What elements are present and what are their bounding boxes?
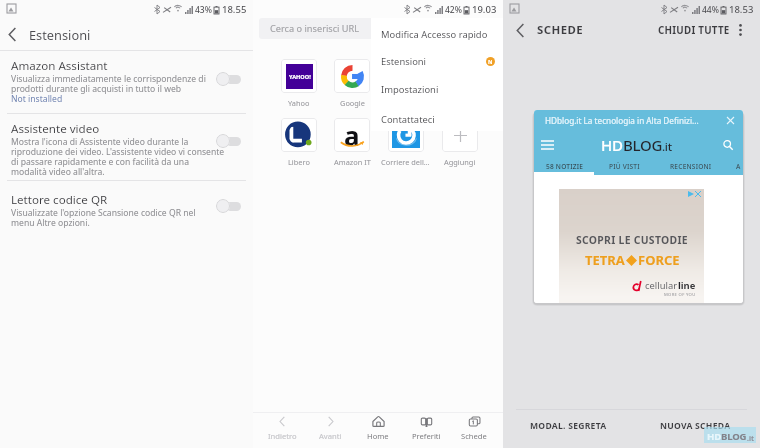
button[interactable]: YAHOO! <box>274 59 324 108</box>
staticText: Schede <box>461 431 487 441</box>
staticText: A <box>736 162 741 171</box>
button[interactable]: Libero <box>274 118 324 167</box>
staticText: Mostra l'icona di Assistente video duran… <box>11 137 189 147</box>
button[interactable]: CHIUDI TUTTE <box>658 20 730 40</box>
button[interactable]: Amazon Assistant <box>0 53 253 110</box>
staticText: 44% <box>702 4 719 16</box>
button[interactable]: Schede <box>453 415 495 441</box>
staticText: Cerca o inserisci URL <box>270 22 360 35</box>
button[interactable]: SCHEDE <box>537 21 584 39</box>
staticText: a <box>344 118 360 146</box>
button[interactable]: Impostazioni <box>371 75 503 103</box>
button[interactable]: Indietro <box>261 415 303 441</box>
staticText: MORE OF YOU <box>664 292 696 298</box>
staticText: BLOG <box>721 430 747 443</box>
staticText: FORCE <box>638 251 680 269</box>
button[interactable]: MODAL. SEGRETA <box>525 415 611 437</box>
button[interactable]: a <box>327 118 377 167</box>
button[interactable]: More options <box>727 17 753 43</box>
button[interactable]: Assistente video <box>0 116 253 183</box>
button[interactable]: Avanti <box>309 415 351 441</box>
staticText: Modifica Accesso rapido <box>381 28 488 41</box>
staticText: HDblog.it La tecnologia in Alta Definizi… <box>545 115 699 126</box>
staticText: Lettore codice QR <box>11 193 108 207</box>
button[interactable]: NUOVA SCHEDA <box>656 415 734 437</box>
staticText: 43% <box>195 4 212 16</box>
staticText: NUOVA SCHEDA <box>660 420 731 432</box>
staticText: Yahoo <box>288 98 310 108</box>
staticText: cellular <box>645 279 678 292</box>
staticText: Home <box>367 431 389 441</box>
staticText: .it <box>747 434 754 443</box>
button[interactable]: Aggiungi <box>435 118 485 167</box>
staticText: Assistente video <box>11 122 100 136</box>
staticText: riproduzione dei video. L'assistente vid… <box>11 147 225 157</box>
button[interactable]: Contattateci <box>371 105 503 133</box>
staticText: 42% <box>445 4 462 16</box>
staticText: HD <box>601 135 623 155</box>
staticText: MODAL. SEGRETA <box>530 420 607 432</box>
button[interactable]: Lettore codice QR <box>0 187 253 234</box>
staticText: Google <box>340 98 365 108</box>
staticText: 18.53 <box>729 3 754 16</box>
staticText: Not installed <box>11 94 63 104</box>
button[interactable]: Estensioni <box>371 47 503 75</box>
button[interactable]: Home <box>357 415 399 441</box>
staticText: Libero <box>288 157 310 167</box>
staticText: N <box>488 58 493 65</box>
button[interactable]: Back <box>507 17 533 43</box>
button[interactable]: Preferiti <box>405 415 447 441</box>
staticText: Contattateci <box>381 113 435 126</box>
button[interactable]: Back <box>0 19 27 49</box>
staticText: line <box>678 279 696 292</box>
staticText: Estensioni <box>381 55 427 68</box>
staticText: Estensioni <box>29 26 91 43</box>
staticText: Corriere della... <box>381 157 431 167</box>
button[interactable]: Toggle <box>216 72 241 86</box>
staticText: BLOG <box>623 135 662 155</box>
staticText: Amazon Assistant <box>11 59 108 73</box>
staticText: CHIUDI TUTTE <box>658 24 730 37</box>
staticText: Avanti <box>319 431 342 441</box>
button[interactable]: Corriere della... <box>381 118 431 167</box>
staticText: 58 NOTIZIE <box>546 162 584 171</box>
staticText: TETRA <box>585 251 625 269</box>
staticText: PIÙ VISTI <box>609 162 640 171</box>
staticText: di passare rapidamente e con facilità da… <box>11 157 189 167</box>
button[interactable]: Cerca o inserisci URL <box>259 18 497 39</box>
staticText: .it <box>662 139 672 155</box>
button[interactable]: Modifica Accesso rapido <box>371 20 503 48</box>
staticText: Visualizzate l'opzione Scansione codice … <box>11 208 196 218</box>
button[interactable]: Toggle <box>216 199 241 213</box>
staticText: modalità video all'altra. <box>11 167 105 177</box>
staticText: HD <box>707 430 721 443</box>
staticText: Aggiungi <box>444 157 476 167</box>
staticText: YAHOO! <box>289 73 311 81</box>
staticText: Impostazioni <box>381 83 439 96</box>
button[interactable]: Google <box>327 59 377 108</box>
button[interactable]: Toggle <box>216 134 241 148</box>
staticText: SCOPRI LE CUSTODIE <box>576 233 688 247</box>
button[interactable]: HDblog.it La tecnologia in Alta Definizi… <box>534 110 743 303</box>
staticText: RECENSIONI <box>670 162 712 171</box>
staticText: Visualizza immediatamente le corrisponde… <box>11 74 206 84</box>
staticText: Amazon IT <box>334 157 371 167</box>
staticText: prodotti durante gli acquisti in tutto i… <box>11 84 182 94</box>
staticText: menu Altre opzioni. <box>11 218 90 228</box>
staticText: 18.55 <box>222 3 247 16</box>
staticText: 19.03 <box>472 3 497 16</box>
staticText: Indietro <box>268 431 297 441</box>
staticText: SCHEDE <box>537 22 584 38</box>
staticText: Preferiti <box>412 431 441 441</box>
